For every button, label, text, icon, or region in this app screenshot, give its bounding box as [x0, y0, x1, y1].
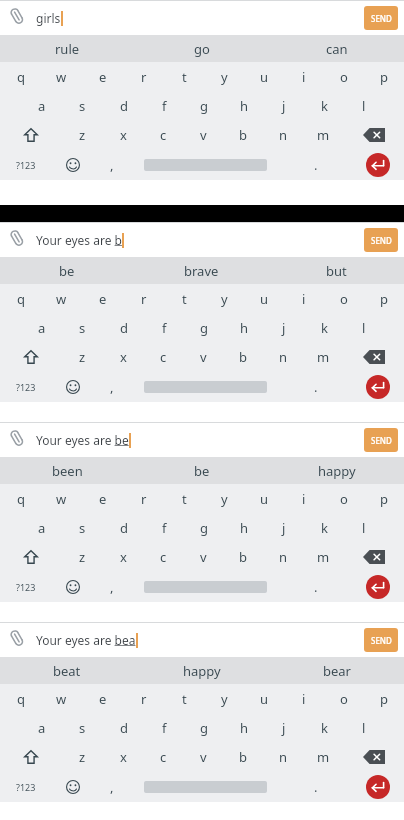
button[interactable]: z: [62, 542, 103, 571]
button[interactable]: s: [62, 513, 103, 542]
button[interactable]: be: [134, 457, 269, 484]
button[interactable]: Shift: [0, 742, 62, 771]
button[interactable]: q: [0, 284, 41, 313]
button[interactable]: u: [244, 484, 284, 513]
button[interactable]: Attach file: [7, 629, 29, 651]
button[interactable]: o: [324, 684, 364, 713]
button[interactable]: o: [324, 484, 364, 513]
button[interactable]: Backspace: [343, 742, 404, 771]
button[interactable]: q: [0, 484, 41, 513]
button[interactable]: ?123: [0, 571, 52, 602]
button[interactable]: y: [204, 684, 244, 713]
button[interactable]: Attach file: [7, 7, 29, 29]
button[interactable]: ,: [94, 371, 130, 402]
button[interactable]: b: [223, 120, 263, 149]
button[interactable]: Enter: [352, 371, 404, 402]
button[interactable]: .: [280, 771, 352, 802]
button[interactable]: u: [244, 284, 284, 313]
button[interactable]: w: [41, 62, 82, 91]
button[interactable]: Space: [130, 771, 280, 802]
button[interactable]: a: [21, 713, 62, 742]
button[interactable]: l: [344, 713, 384, 742]
button[interactable]: i: [284, 284, 324, 313]
button[interactable]: x: [103, 120, 143, 149]
button[interactable]: t: [164, 684, 204, 713]
button[interactable]: e: [82, 684, 123, 713]
button[interactable]: t: [164, 484, 204, 513]
button[interactable]: l: [344, 91, 384, 120]
button[interactable]: e: [82, 62, 123, 91]
button[interactable]: m: [303, 342, 343, 371]
button[interactable]: v: [183, 120, 223, 149]
button[interactable]: b: [223, 342, 263, 371]
button[interactable]: x: [103, 542, 143, 571]
button[interactable]: m: [303, 120, 343, 149]
button[interactable]: d: [103, 713, 144, 742]
button[interactable]: y: [204, 62, 244, 91]
button[interactable]: happy: [269, 457, 404, 484]
button[interactable]: m: [303, 542, 343, 571]
button[interactable]: Emoji: [52, 771, 94, 802]
button[interactable]: ,: [94, 149, 130, 180]
button[interactable]: d: [103, 313, 144, 342]
button[interactable]: .: [280, 371, 352, 402]
button[interactable]: n: [263, 120, 303, 149]
button[interactable]: w: [41, 684, 82, 713]
button[interactable]: .: [280, 571, 352, 602]
button[interactable]: k: [304, 713, 344, 742]
button[interactable]: z: [62, 342, 103, 371]
button[interactable]: f: [144, 91, 184, 120]
button[interactable]: Emoji: [52, 571, 94, 602]
button[interactable]: n: [263, 342, 303, 371]
button[interactable]: s: [62, 313, 103, 342]
button[interactable]: Attach file: [7, 429, 29, 451]
button[interactable]: r: [123, 484, 164, 513]
button[interactable]: u: [244, 62, 284, 91]
button[interactable]: bear: [269, 657, 404, 684]
button[interactable]: i: [284, 62, 324, 91]
button[interactable]: c: [143, 342, 183, 371]
button[interactable]: been: [0, 457, 134, 484]
button[interactable]: ,: [94, 571, 130, 602]
button[interactable]: brave: [134, 257, 269, 284]
button[interactable]: a: [21, 513, 62, 542]
button[interactable]: k: [304, 513, 344, 542]
button[interactable]: ?123: [0, 771, 52, 802]
button[interactable]: x: [103, 342, 143, 371]
button[interactable]: Space: [130, 571, 280, 602]
button[interactable]: r: [123, 684, 164, 713]
button[interactable]: w: [41, 484, 82, 513]
button[interactable]: f: [144, 313, 184, 342]
button[interactable]: r: [123, 284, 164, 313]
button[interactable]: j: [264, 313, 304, 342]
button[interactable]: a: [21, 91, 62, 120]
button[interactable]: happy: [134, 657, 269, 684]
button[interactable]: n: [263, 542, 303, 571]
button[interactable]: p: [364, 684, 404, 713]
button[interactable]: e: [82, 284, 123, 313]
button[interactable]: d: [103, 91, 144, 120]
button[interactable]: be: [0, 257, 134, 284]
button[interactable]: r: [123, 62, 164, 91]
button[interactable]: u: [244, 684, 284, 713]
button[interactable]: z: [62, 120, 103, 149]
button[interactable]: .: [280, 149, 352, 180]
button[interactable]: q: [0, 684, 41, 713]
button[interactable]: a: [21, 313, 62, 342]
button[interactable]: Enter: [352, 771, 404, 802]
button[interactable]: o: [324, 284, 364, 313]
button[interactable]: Emoji: [52, 149, 94, 180]
button[interactable]: p: [364, 484, 404, 513]
button[interactable]: Backspace: [343, 342, 404, 371]
button[interactable]: x: [103, 742, 143, 771]
button[interactable]: SEND: [364, 428, 398, 452]
button[interactable]: b: [223, 742, 263, 771]
button[interactable]: g: [184, 313, 224, 342]
button[interactable]: ?123: [0, 371, 52, 402]
button[interactable]: y: [204, 284, 244, 313]
button[interactable]: g: [184, 91, 224, 120]
button[interactable]: i: [284, 484, 324, 513]
button[interactable]: Enter: [352, 149, 404, 180]
button[interactable]: h: [224, 91, 264, 120]
button[interactable]: l: [344, 513, 384, 542]
